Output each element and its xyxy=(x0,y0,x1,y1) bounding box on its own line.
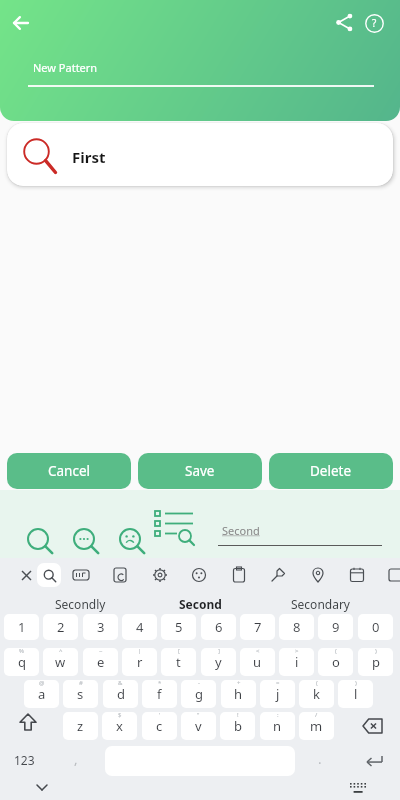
button[interactable]: First xyxy=(7,123,393,186)
staticText: z xyxy=(77,717,84,735)
button[interactable] xyxy=(0,2,42,44)
button[interactable]: m xyxy=(299,712,334,740)
button[interactable] xyxy=(187,563,211,587)
button[interactable] xyxy=(66,522,102,558)
button[interactable] xyxy=(69,563,93,587)
button[interactable]: 3 xyxy=(83,614,118,640)
button[interactable] xyxy=(13,562,39,588)
staticText: v xyxy=(195,717,202,735)
button[interactable]: 123 xyxy=(14,752,35,768)
button[interactable]: 2 xyxy=(43,614,78,640)
staticText: 0 xyxy=(372,618,380,636)
button[interactable] xyxy=(6,708,50,736)
button[interactable] xyxy=(350,712,394,740)
staticText: ! xyxy=(237,711,239,719)
button[interactable]: Secondary xyxy=(270,592,370,616)
button[interactable]: a xyxy=(24,680,59,708)
button[interactable] xyxy=(266,563,290,587)
button[interactable]: 7 xyxy=(240,614,275,640)
button[interactable]: Save xyxy=(138,453,262,489)
button[interactable]: x xyxy=(102,712,137,740)
staticText: b xyxy=(234,717,242,735)
button[interactable]: Delete xyxy=(269,453,393,489)
staticText: % xyxy=(19,647,24,655)
button[interactable]: o xyxy=(318,648,353,676)
staticText: o xyxy=(332,653,340,671)
button[interactable]: l xyxy=(338,680,373,708)
staticText: 6 xyxy=(215,618,223,636)
staticText: ] xyxy=(218,647,220,655)
button[interactable] xyxy=(343,780,373,798)
button[interactable] xyxy=(112,522,148,558)
staticText: = xyxy=(276,679,280,687)
button[interactable] xyxy=(108,563,132,587)
staticText: d xyxy=(117,685,125,703)
staticText: t xyxy=(176,653,181,671)
staticText: Secondary xyxy=(291,596,350,612)
button[interactable]: 5 xyxy=(161,614,196,640)
button[interactable]: z xyxy=(63,712,98,740)
staticText: j xyxy=(276,685,280,703)
staticText: Second xyxy=(222,523,260,538)
button[interactable]: n xyxy=(260,712,295,740)
button[interactable]: 9 xyxy=(318,614,353,640)
button[interactable] xyxy=(358,748,390,774)
staticText: h xyxy=(234,685,243,703)
button[interactable]: t xyxy=(161,648,196,676)
button[interactable] xyxy=(155,507,197,547)
button[interactable]: 0 xyxy=(358,614,393,640)
staticText: r xyxy=(137,653,143,671)
staticText: Cancel xyxy=(48,462,91,480)
button[interactable] xyxy=(20,522,56,558)
button[interactable]: s xyxy=(63,680,98,708)
button[interactable]: v xyxy=(181,712,216,740)
button[interactable]: g xyxy=(181,680,216,708)
button[interactable]: . xyxy=(318,750,322,768)
staticText: # xyxy=(79,679,83,687)
button[interactable]: u xyxy=(240,648,275,676)
staticText: & xyxy=(118,679,123,687)
button[interactable] xyxy=(345,563,369,587)
button[interactable] xyxy=(227,563,251,587)
staticText: g xyxy=(195,685,203,703)
button[interactable]: k xyxy=(299,680,334,708)
button[interactable] xyxy=(148,563,172,587)
button[interactable]: q xyxy=(4,648,39,676)
button[interactable]: 1 xyxy=(4,614,39,640)
button[interactable]: d xyxy=(103,680,138,708)
button[interactable]: c xyxy=(142,712,177,740)
button[interactable]: r xyxy=(122,648,157,676)
button[interactable]: Secondly xyxy=(30,592,130,616)
button[interactable]: ? xyxy=(354,3,394,43)
button[interactable] xyxy=(306,563,330,587)
button[interactable]: Second xyxy=(150,592,250,616)
button[interactable]: h xyxy=(221,680,256,708)
button[interactable]: 6 xyxy=(201,614,236,640)
button[interactable]: i xyxy=(279,648,314,676)
button[interactable]: e xyxy=(83,648,118,676)
staticText: < xyxy=(256,647,260,655)
button[interactable]: 8 xyxy=(279,614,314,640)
button[interactable]: , xyxy=(74,750,78,768)
button[interactable]: 4 xyxy=(122,614,157,640)
staticText: | xyxy=(138,647,142,655)
staticText: > xyxy=(295,647,299,655)
button[interactable]: Cancel xyxy=(7,453,131,489)
button[interactable] xyxy=(28,776,56,798)
button[interactable]: f xyxy=(142,680,177,708)
staticText: @ xyxy=(39,679,45,687)
staticText: a xyxy=(38,685,46,703)
button[interactable]: y xyxy=(201,648,236,676)
staticText: New Pattern xyxy=(33,60,98,75)
staticText: ) xyxy=(355,679,357,687)
button[interactable] xyxy=(324,2,364,42)
button[interactable]: w xyxy=(43,648,78,676)
button[interactable] xyxy=(37,563,61,587)
button[interactable]: j xyxy=(260,680,295,708)
button[interactable] xyxy=(385,563,400,587)
button[interactable]: b xyxy=(220,712,255,740)
staticText: m xyxy=(310,717,323,735)
button[interactable]: p xyxy=(358,648,393,676)
staticText: + xyxy=(237,679,241,687)
